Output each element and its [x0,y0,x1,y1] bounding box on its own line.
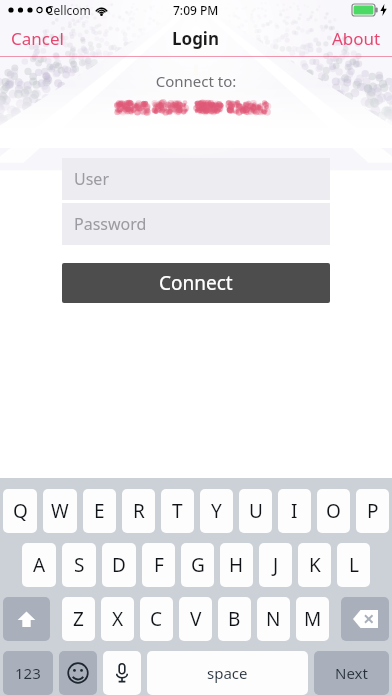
button[interactable]: Y [200,489,233,533]
staticText: X [112,606,124,632]
staticText: D [112,552,126,578]
button[interactable]: Z [62,597,95,641]
staticText: S [74,552,85,578]
staticText: M [304,606,322,632]
staticText: N [266,606,281,632]
staticText: Z [73,606,84,632]
staticText: G [191,552,205,578]
staticText: Connect to: [0,71,392,91]
button[interactable]: U [239,489,272,533]
staticText: O [326,498,341,524]
staticText: R [133,498,145,524]
button[interactable]: P [356,489,389,533]
button[interactable]: H [220,543,253,587]
staticText: J [273,552,279,578]
staticText: E [94,498,105,524]
staticText: Cellcom [46,2,91,18]
staticText: A [33,552,46,578]
button[interactable]: Password [62,203,330,245]
button[interactable]: 123 [3,651,53,695]
staticText: P [367,498,379,524]
staticText: V [190,606,202,632]
staticText: space [207,663,248,683]
button[interactable]: A [22,543,56,587]
button[interactable]: Delete [341,597,389,641]
staticText: Login [172,27,220,50]
button[interactable]: V [179,597,212,641]
staticText: 7:09 PM [173,2,219,18]
button[interactable]: F [142,543,175,587]
staticText: B [228,606,241,632]
staticText: Connect [159,270,233,296]
staticText: K [309,552,321,578]
button[interactable]: Q [3,489,37,533]
button[interactable]: G [181,543,214,587]
button[interactable]: T [161,489,194,533]
button[interactable]: M [296,597,329,641]
button[interactable]: I [278,489,311,533]
button[interactable]: O [317,489,350,533]
staticText: I [291,498,298,524]
button[interactable]: R [122,489,155,533]
button[interactable]: User [62,158,330,200]
staticText: L [349,552,359,578]
staticText: Y [211,498,222,524]
staticText: U [249,498,263,524]
button[interactable]: Next [314,651,389,695]
button[interactable]: D [102,543,136,587]
staticText: Next [335,663,368,683]
button[interactable]: E [83,489,116,533]
staticText: Password [74,213,147,235]
staticText: C [150,606,163,632]
button[interactable]: Cancel [0,21,75,56]
button[interactable]: C [140,597,173,641]
staticText: H [229,552,244,578]
button[interactable]: W [43,489,77,533]
staticText: About [332,27,381,50]
staticText: W [51,498,69,524]
button[interactable]: B [218,597,251,641]
button[interactable]: L [337,543,370,587]
button[interactable]: K [298,543,331,587]
button[interactable]: Emoji [59,651,97,695]
staticText: User [74,168,109,190]
button[interactable]: S [62,543,96,587]
button[interactable]: J [259,543,292,587]
button[interactable]: N [257,597,290,641]
staticText: Q [13,498,28,524]
staticText: T [172,498,183,524]
button[interactable]: About [321,21,392,56]
button[interactable]: X [101,597,134,641]
staticText: 123 [15,663,41,683]
button[interactable]: Dictation [103,651,141,695]
button[interactable]: Connect [62,263,330,303]
staticText: F [154,552,164,578]
button[interactable]: space [147,651,308,695]
button[interactable]: Shift [3,597,50,641]
staticText: Cancel [11,27,64,50]
